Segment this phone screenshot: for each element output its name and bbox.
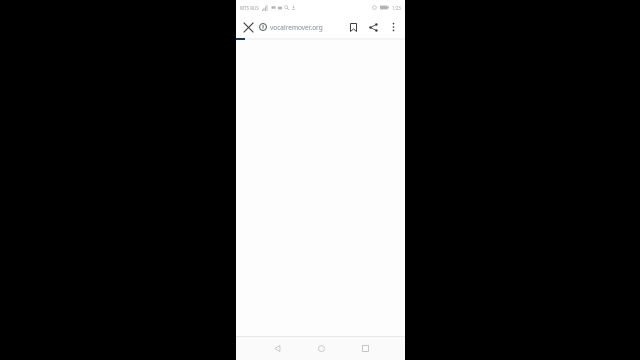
button[interactable]: vocalremover.org [259,17,343,37]
staticText: MTS RUS [240,5,259,11]
button[interactable]: Recent apps [348,337,382,360]
button[interactable]: Home [304,337,338,360]
button[interactable]: Bookmark [343,17,363,37]
button[interactable]: Close [239,18,257,36]
staticText: vocalremover.org [270,23,323,32]
button[interactable]: Share [363,17,383,37]
staticText: 1:23 [392,5,401,11]
button[interactable]: Back [260,337,294,360]
button[interactable]: More options [383,17,403,37]
